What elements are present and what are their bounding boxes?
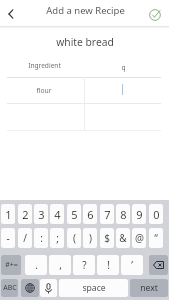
- staticText: .: [35, 258, 38, 272]
- staticText: /: [23, 231, 27, 245]
- staticText: next: [140, 282, 158, 294]
- staticText: ,: [59, 258, 62, 272]
- button[interactable]: 3: [34, 204, 48, 224]
- staticText: ’: [131, 258, 133, 272]
- button[interactable]: 4: [50, 204, 64, 224]
- staticText: 3: [38, 207, 45, 222]
- button[interactable]: .: [25, 255, 47, 275]
- staticText: 6: [87, 207, 94, 222]
- staticText: 9: [136, 207, 143, 222]
- staticText: flour: [36, 86, 52, 95]
- button[interactable]: Letters: [1, 279, 18, 297]
- staticText: 2: [22, 207, 29, 222]
- button[interactable]: Symbols: [1, 255, 21, 275]
- staticText: space: [82, 282, 106, 294]
- button[interactable]: space: [59, 279, 128, 297]
- button[interactable]: 0: [149, 204, 163, 224]
- button[interactable]: ?: [73, 255, 95, 275]
- staticText: 4: [54, 207, 61, 222]
- button[interactable]: 1: [1, 204, 15, 224]
- button[interactable]: $: [100, 228, 114, 248]
- staticText: !: [107, 258, 110, 272]
- button[interactable]: -: [1, 228, 15, 248]
- button[interactable]: Save recipe: [146, 6, 163, 23]
- button[interactable]: ’: [121, 255, 143, 275]
- staticText: #+=: [5, 260, 18, 270]
- staticText: @: [135, 231, 144, 245]
- button[interactable]: 7: [100, 204, 114, 224]
- button[interactable]: 8: [116, 204, 130, 224]
- staticText: q: [121, 63, 126, 72]
- button[interactable]: next: [130, 279, 168, 297]
- button[interactable]: @: [132, 228, 146, 248]
- button[interactable]: Change keyboard: [21, 279, 39, 297]
- button[interactable]: /: [18, 228, 32, 248]
- staticText: 8: [120, 207, 127, 222]
- button[interactable]: 6: [83, 204, 97, 224]
- button[interactable]: 2: [18, 204, 32, 224]
- staticText: :: [40, 231, 43, 245]
- button[interactable]: ;: [50, 228, 64, 248]
- button[interactable]: &: [116, 228, 130, 248]
- staticText: 1: [5, 207, 12, 222]
- staticText: ;: [56, 231, 59, 245]
- button[interactable]: 5: [67, 204, 81, 224]
- button[interactable]: Dictate: [40, 279, 57, 297]
- staticText: ?: [82, 258, 87, 272]
- staticText: ABC: [3, 283, 17, 293]
- staticText: 7: [104, 207, 111, 222]
- staticText: &: [119, 231, 127, 245]
- staticText: -: [6, 231, 10, 245]
- staticText: 5: [71, 207, 78, 222]
- button[interactable]: !: [97, 255, 119, 275]
- button[interactable]: 9: [132, 204, 146, 224]
- staticText: ): [89, 231, 92, 245]
- button[interactable]: (: [67, 228, 81, 248]
- button[interactable]: ): [83, 228, 97, 248]
- button[interactable]: :: [34, 228, 48, 248]
- staticText: 0: [153, 207, 160, 222]
- staticText: Ingredient: [28, 61, 61, 70]
- button[interactable]: Back: [1, 4, 21, 24]
- staticText: $: [104, 231, 110, 245]
- staticText: (: [73, 231, 76, 245]
- button[interactable]: Backspace: [149, 255, 168, 275]
- staticText: white bread: [56, 35, 114, 49]
- staticText: “: [154, 231, 158, 245]
- button[interactable]: ,: [49, 255, 71, 275]
- button[interactable]: “: [149, 228, 163, 248]
- staticText: Add a new Recipe: [46, 4, 125, 17]
